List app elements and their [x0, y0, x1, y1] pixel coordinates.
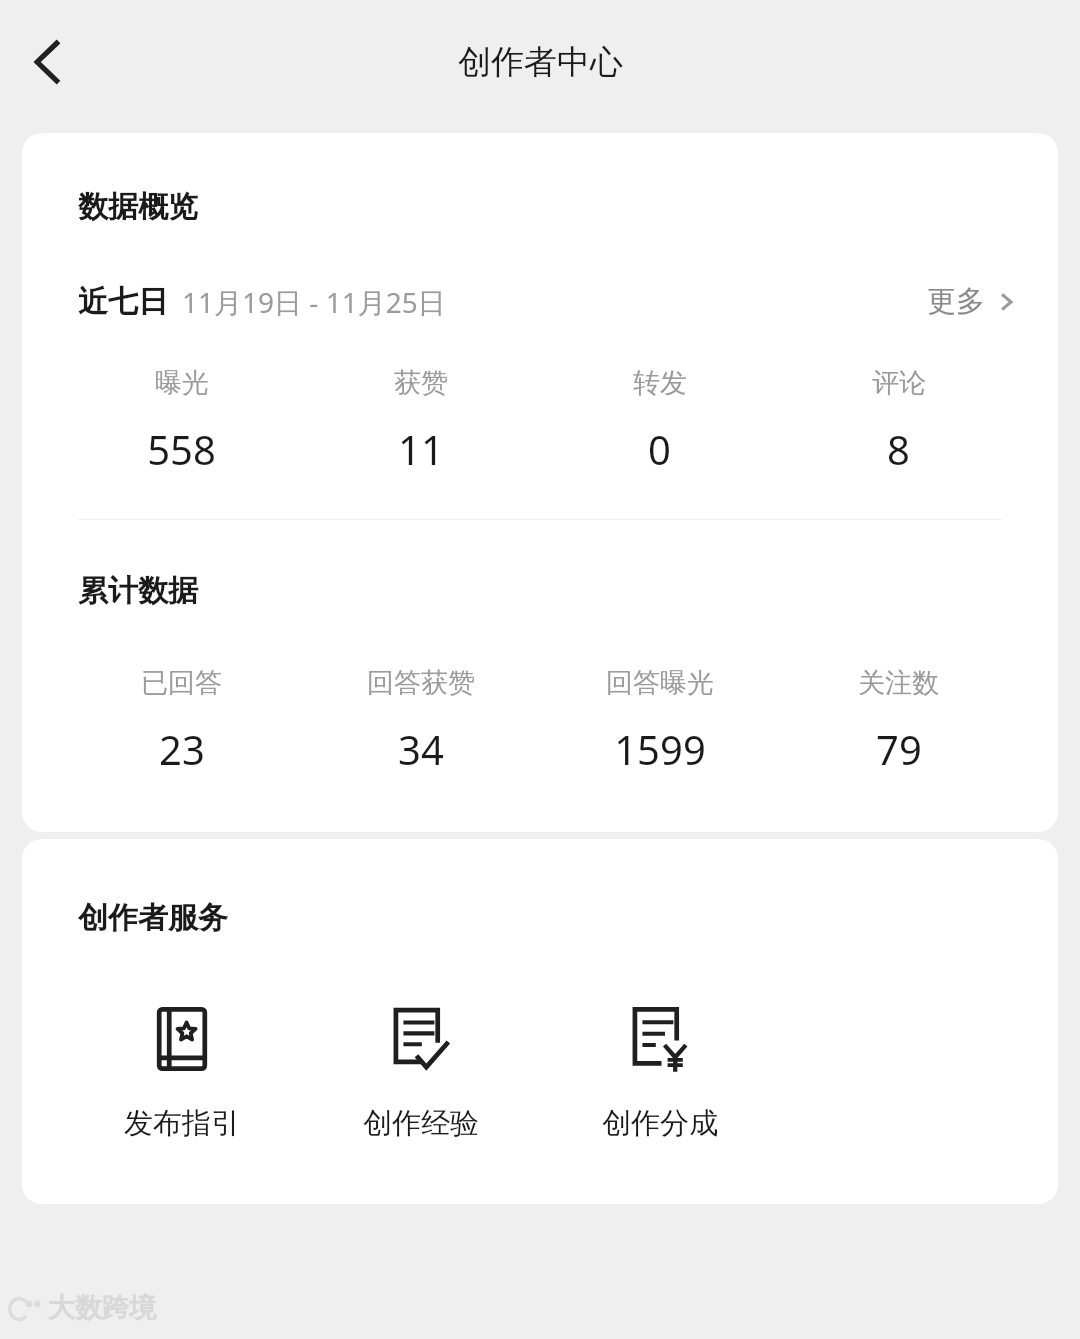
staticText: 79	[876, 722, 922, 776]
button[interactable]: 获赞	[301, 366, 540, 476]
staticText: 1599	[614, 722, 706, 776]
button[interactable]: 回答获赞	[301, 666, 540, 776]
button[interactable]: 曝光	[62, 366, 301, 476]
staticText: 数据概览	[78, 188, 198, 226]
staticText: 0	[648, 422, 671, 476]
staticText: 发布指引	[124, 1105, 240, 1142]
staticText: 34	[398, 722, 444, 776]
staticText: 回答获赞	[367, 666, 475, 700]
staticText: 11	[398, 422, 444, 476]
staticText: 曝光	[155, 366, 209, 400]
staticText: 8	[887, 422, 910, 476]
staticText: 已回答	[141, 666, 222, 700]
staticText: 累计数据	[78, 572, 198, 610]
button[interactable]: Back	[12, 26, 84, 98]
staticText: 创作者中心	[458, 41, 623, 83]
button[interactable]: 发布指引	[62, 1001, 301, 1142]
button[interactable]: 关注数	[779, 666, 1018, 776]
staticText: 大数跨境	[48, 1291, 156, 1325]
staticText: 558	[147, 422, 216, 476]
button[interactable]: 转发	[540, 366, 779, 476]
staticText: 创作分成	[602, 1105, 718, 1142]
button[interactable]: 回答曝光	[540, 666, 779, 776]
button[interactable]: 已回答	[62, 666, 301, 776]
staticText: 创作者服务	[78, 899, 228, 937]
staticText: 更多	[927, 283, 985, 320]
staticText: 近七日	[78, 283, 168, 321]
staticText: 获赞	[394, 366, 448, 400]
button[interactable]: 创作分成	[540, 1001, 779, 1142]
button[interactable]: 评论	[779, 366, 1018, 476]
button[interactable]: 更多	[923, 277, 1022, 326]
staticText: 转发	[633, 366, 687, 400]
button[interactable]: 创作经验	[301, 1001, 540, 1142]
staticText: 23	[159, 722, 205, 776]
staticText: 回答曝光	[606, 666, 714, 700]
staticText: 评论	[872, 366, 926, 400]
staticText: 创作经验	[363, 1105, 479, 1142]
staticText: 11月19日 - 11月25日	[182, 283, 446, 321]
staticText: 关注数	[858, 666, 939, 700]
